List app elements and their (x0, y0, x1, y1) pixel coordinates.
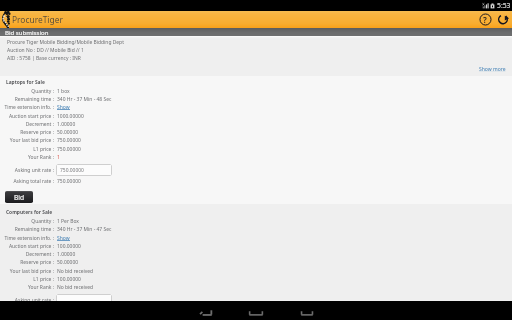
staticText: 100.00000 (57, 243, 81, 250)
button[interactable]: 750.00000 (56, 164, 112, 176)
staticText: Asking unit rate : (0, 297, 54, 304)
staticText: Decrement : (0, 251, 54, 258)
staticText: No bid received (57, 284, 94, 291)
staticText: Quantity : (0, 88, 54, 95)
staticText: Auction start price : (0, 113, 54, 120)
staticText: 1 box (57, 88, 70, 95)
button[interactable]: Bid (5, 191, 33, 203)
staticText: ProcureTiger (12, 14, 63, 25)
staticText: Show (57, 104, 70, 111)
staticText: 1 Per Box (57, 218, 79, 225)
staticText: Auction No : DD // Mobile Bid // 1 (7, 47, 84, 53)
staticText: AID : 5758 | Base currency : INR (7, 55, 81, 61)
button[interactable]: Show (57, 235, 70, 242)
staticText: 5:53 (497, 1, 511, 10)
staticText: L1 price : (0, 276, 54, 283)
staticText: Bid (14, 193, 25, 202)
staticText: Your Rank : (0, 284, 54, 291)
staticText: ? (483, 14, 487, 25)
staticText: 750.00000 (57, 137, 81, 144)
staticText: Remaining time : (0, 96, 54, 103)
staticText: Decrement : (0, 121, 54, 128)
staticText: Reserve price : (0, 129, 54, 136)
staticText: 340 Hr - 37 Min - 47 Sec (57, 226, 112, 233)
staticText: Bid submission (5, 28, 49, 36)
staticText: Your Rank : (0, 154, 54, 161)
button[interactable]: Recent apps (291, 303, 323, 320)
button[interactable] (56, 294, 112, 306)
staticText: 100.00000 (57, 276, 81, 283)
staticText: 1.00000 (57, 251, 76, 258)
staticText: Asking unit rate : (0, 167, 54, 174)
staticText: Laptops for Sale (6, 79, 45, 86)
staticText: Show (57, 235, 70, 242)
staticText: 1.00000 (57, 121, 76, 128)
staticText: 750.00000 (57, 146, 81, 153)
staticText: Time extension info. : (0, 104, 54, 111)
staticText: Quantity : (0, 218, 54, 225)
staticText: Auction start price : (0, 243, 54, 250)
staticText: L1 price : (0, 146, 54, 153)
staticText: Reserve price : (0, 259, 54, 266)
staticText: 750.00000 (57, 178, 81, 185)
staticText: Your last bid price : (0, 137, 54, 144)
staticText: 340 Hr - 37 Min - 48 Sec (57, 96, 112, 103)
staticText: Procure Tiger Mobile Bidding/Mobile Bidd… (7, 39, 124, 45)
staticText: No bid received (57, 268, 94, 275)
button[interactable]: Refresh (495, 11, 512, 28)
staticText: Time extension info. : (0, 235, 54, 242)
staticText: 50.00000 (57, 129, 79, 136)
staticText: 1 (57, 154, 60, 161)
button[interactable]: Help (477, 11, 493, 28)
staticText: Asking total rate : (0, 178, 54, 185)
button[interactable]: Back (189, 303, 221, 320)
button[interactable]: Show (57, 104, 70, 111)
button[interactable]: Show more (479, 66, 506, 72)
button[interactable]: Home (240, 303, 272, 320)
staticText: Remaining time : (0, 226, 54, 233)
staticText: 1000.00000 (57, 113, 84, 120)
staticText: 50.00000 (57, 259, 79, 266)
staticText: 750.00000 (60, 167, 84, 174)
staticText: Computers for Sale (6, 209, 53, 216)
staticText: Your last bid price : (0, 268, 54, 275)
